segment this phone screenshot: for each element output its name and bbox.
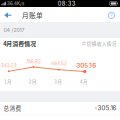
staticText: 4月消费情况 — [3, 39, 36, 48]
staticText: ? — [110, 12, 113, 19]
staticText: 746.82 — [26, 59, 41, 64]
staticText: 1月 — [4, 78, 12, 85]
button[interactable]: 切换收入情况 — [82, 40, 117, 47]
staticText: 08:33 — [58, 0, 76, 7]
staticText: 月账单 — [22, 10, 43, 20]
staticText: 2月 — [29, 78, 37, 85]
staticText: 305.16 — [76, 62, 96, 69]
staticText: 3月 — [54, 78, 62, 85]
staticText: 464.52 — [51, 61, 67, 66]
staticText: 4月 — [80, 78, 88, 85]
staticText: 总消费 — [3, 104, 21, 112]
staticText: -305.16 — [94, 104, 116, 112]
staticText: 36.4K/s — [7, 1, 24, 6]
staticText: 343.23 — [1, 63, 17, 68]
button[interactable]: Back — [2, 9, 14, 21]
staticText: 04 /2017 — [3, 27, 24, 33]
button[interactable]: Help — [106, 10, 117, 21]
staticText: 切换收入情况 — [87, 40, 117, 47]
